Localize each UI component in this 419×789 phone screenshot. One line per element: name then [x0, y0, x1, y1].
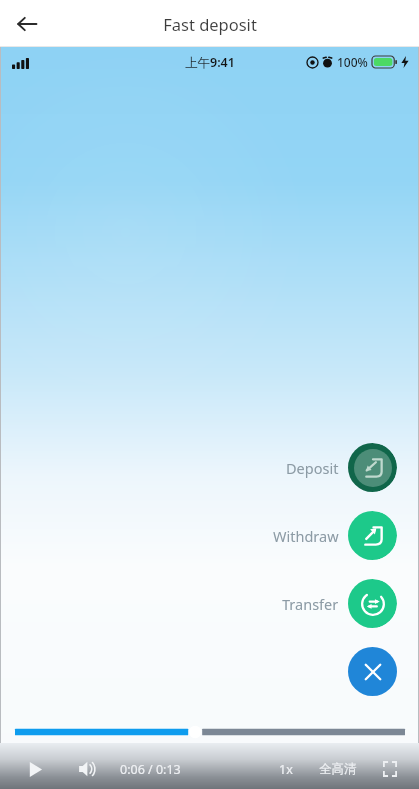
staticText: 全高清: [319, 761, 357, 777]
staticText: 0:06 / 0:13: [120, 761, 181, 778]
button[interactable]: Fullscreen: [377, 756, 403, 782]
button[interactable]: Seek bar: [0, 721, 419, 743]
staticText: Withdraw: [273, 526, 339, 546]
button[interactable]: Transfer: [282, 579, 397, 628]
button[interactable]: 1x: [275, 758, 297, 781]
button[interactable]: 全高清: [315, 758, 361, 780]
button[interactable]: Close: [348, 647, 397, 696]
button[interactable]: Withdraw: [273, 511, 397, 560]
button[interactable]: Deposit: [286, 443, 397, 492]
button[interactable]: Volume: [72, 754, 102, 784]
staticText: 1x: [279, 761, 293, 778]
staticText: 100%: [337, 54, 368, 70]
staticText: Fast deposit: [163, 13, 257, 35]
staticText: Transfer: [282, 594, 339, 614]
staticText: Deposit: [286, 458, 339, 478]
button[interactable]: Back: [6, 3, 48, 45]
button[interactable]: Play: [20, 754, 50, 784]
staticText: 上午9:41: [185, 54, 235, 71]
